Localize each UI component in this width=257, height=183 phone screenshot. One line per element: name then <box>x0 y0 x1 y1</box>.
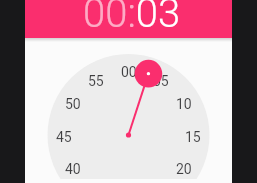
button[interactable]: 50 <box>55 94 91 114</box>
staticText: 00:03 <box>83 0 181 28</box>
staticText: 55 <box>88 73 104 89</box>
staticText: 00 <box>121 64 137 80</box>
button[interactable]: 55 <box>78 71 114 91</box>
staticText: 05 <box>153 73 169 89</box>
button[interactable]: 40 <box>55 159 91 179</box>
staticText: 20 <box>176 161 192 177</box>
staticText: 15 <box>185 129 201 145</box>
button[interactable]: 05 <box>143 71 179 91</box>
staticText: 10 <box>176 96 192 112</box>
button[interactable]: 15 <box>175 127 211 147</box>
button[interactable]: 00 <box>111 62 147 82</box>
button[interactable] <box>47 53 211 183</box>
button[interactable]: 20 <box>166 159 202 179</box>
button[interactable]: 10 <box>166 94 202 114</box>
button[interactable]: 45 <box>46 127 82 147</box>
staticText: 45 <box>56 129 72 145</box>
staticText: 40 <box>65 161 81 177</box>
button[interactable]: 00:03 <box>83 0 181 28</box>
staticText: 50 <box>65 96 81 112</box>
